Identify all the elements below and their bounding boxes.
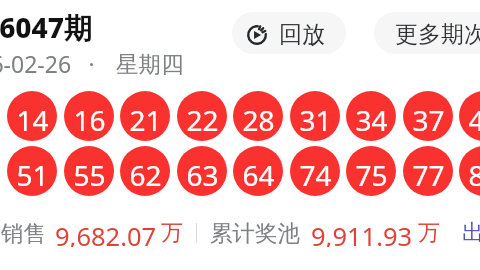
button[interactable]: 77 [403, 146, 453, 196]
other: 回放 [247, 25, 267, 45]
staticText: 28 [242, 101, 275, 139]
staticText: 81 [468, 156, 480, 194]
staticText: 55 [73, 156, 106, 194]
button[interactable]: 37 [403, 91, 453, 141]
button[interactable]: 22 [177, 91, 227, 141]
button[interactable]: 21 [120, 91, 170, 141]
staticText: 62 [129, 156, 162, 194]
button[interactable]: 16 [64, 91, 114, 141]
staticText: 9,682.07 [55, 219, 157, 247]
staticText: 万 [418, 219, 440, 247]
staticText: 14 [16, 101, 49, 139]
button[interactable]: 34 [346, 91, 396, 141]
button[interactable]: 74 [290, 146, 340, 196]
button[interactable]: 出 [462, 219, 480, 247]
button[interactable]: 更多期次 [374, 12, 480, 54]
staticText: 9,911.93 [311, 219, 413, 247]
staticText: 21 [129, 101, 162, 139]
staticText: 16 [73, 101, 106, 139]
staticText: 41 [468, 101, 480, 139]
button[interactable]: 14 [7, 91, 57, 141]
staticText: 63 [186, 156, 219, 194]
staticText: 34 [355, 101, 388, 139]
button[interactable]: 81 [459, 146, 480, 196]
staticText: 51 [16, 156, 49, 194]
staticText: 22 [186, 101, 219, 139]
button[interactable]: 64 [233, 146, 283, 196]
staticText: 64 [242, 156, 275, 194]
staticText: 26047期 [0, 8, 92, 46]
staticText: 累计奖池 [210, 219, 300, 247]
staticText: 31 [299, 101, 332, 139]
staticText: 75 [355, 156, 388, 194]
staticText: 万 [161, 219, 183, 247]
staticText: 37 [412, 101, 445, 139]
staticText: 77 [412, 156, 445, 194]
button[interactable]: 62 [120, 146, 170, 196]
button[interactable]: 41 [459, 91, 480, 141]
staticText: 星期四 [116, 50, 184, 78]
button[interactable]: 回放 [232, 12, 346, 54]
button[interactable]: 75 [346, 146, 396, 196]
button[interactable]: 63 [177, 146, 227, 196]
button[interactable]: 28 [233, 91, 283, 141]
button[interactable]: 55 [64, 146, 114, 196]
staticText: 销售 [1, 219, 46, 247]
staticText: 更多期次 [395, 20, 480, 49]
staticText: 2026-02-26 [0, 48, 72, 79]
staticText: 74 [299, 156, 332, 194]
staticText: 回放 [279, 20, 325, 49]
button[interactable]: 31 [290, 91, 340, 141]
button[interactable]: 51 [7, 146, 57, 196]
